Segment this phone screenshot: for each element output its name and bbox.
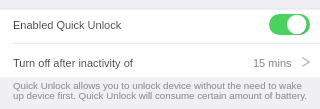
staticText: up device first. Quick Unlock will consu… (13, 90, 320, 101)
button[interactable]: Enabled Quick Unlock, on (269, 14, 310, 35)
staticText: 15 mins (253, 57, 292, 69)
staticText: Quick Unlock allows you to unlock device… (13, 80, 320, 91)
staticText: Turn off after inactivity of (13, 57, 133, 69)
button[interactable]: Enabled Quick Unlock (0, 9, 320, 43)
other: Open (302, 57, 310, 67)
staticText: Enabled Quick Unlock (13, 19, 122, 31)
button[interactable]: Turn off after inactivity of (0, 43, 320, 77)
